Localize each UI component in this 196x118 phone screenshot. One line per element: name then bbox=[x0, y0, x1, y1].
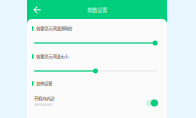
staticText: 效果显示浮球透明度 bbox=[36, 25, 72, 32]
staticText: 效果显示浮球大小 bbox=[36, 53, 68, 60]
staticText: 参数设置 bbox=[87, 6, 107, 14]
staticText: 设备开机后自动启动 bbox=[34, 103, 52, 106]
staticText: 开机自启动 bbox=[34, 95, 54, 102]
staticText: 其他设置 bbox=[36, 80, 52, 87]
button[interactable]: Back bbox=[30, 2, 45, 17]
button[interactable]: 开机自启动 bbox=[34, 94, 158, 108]
